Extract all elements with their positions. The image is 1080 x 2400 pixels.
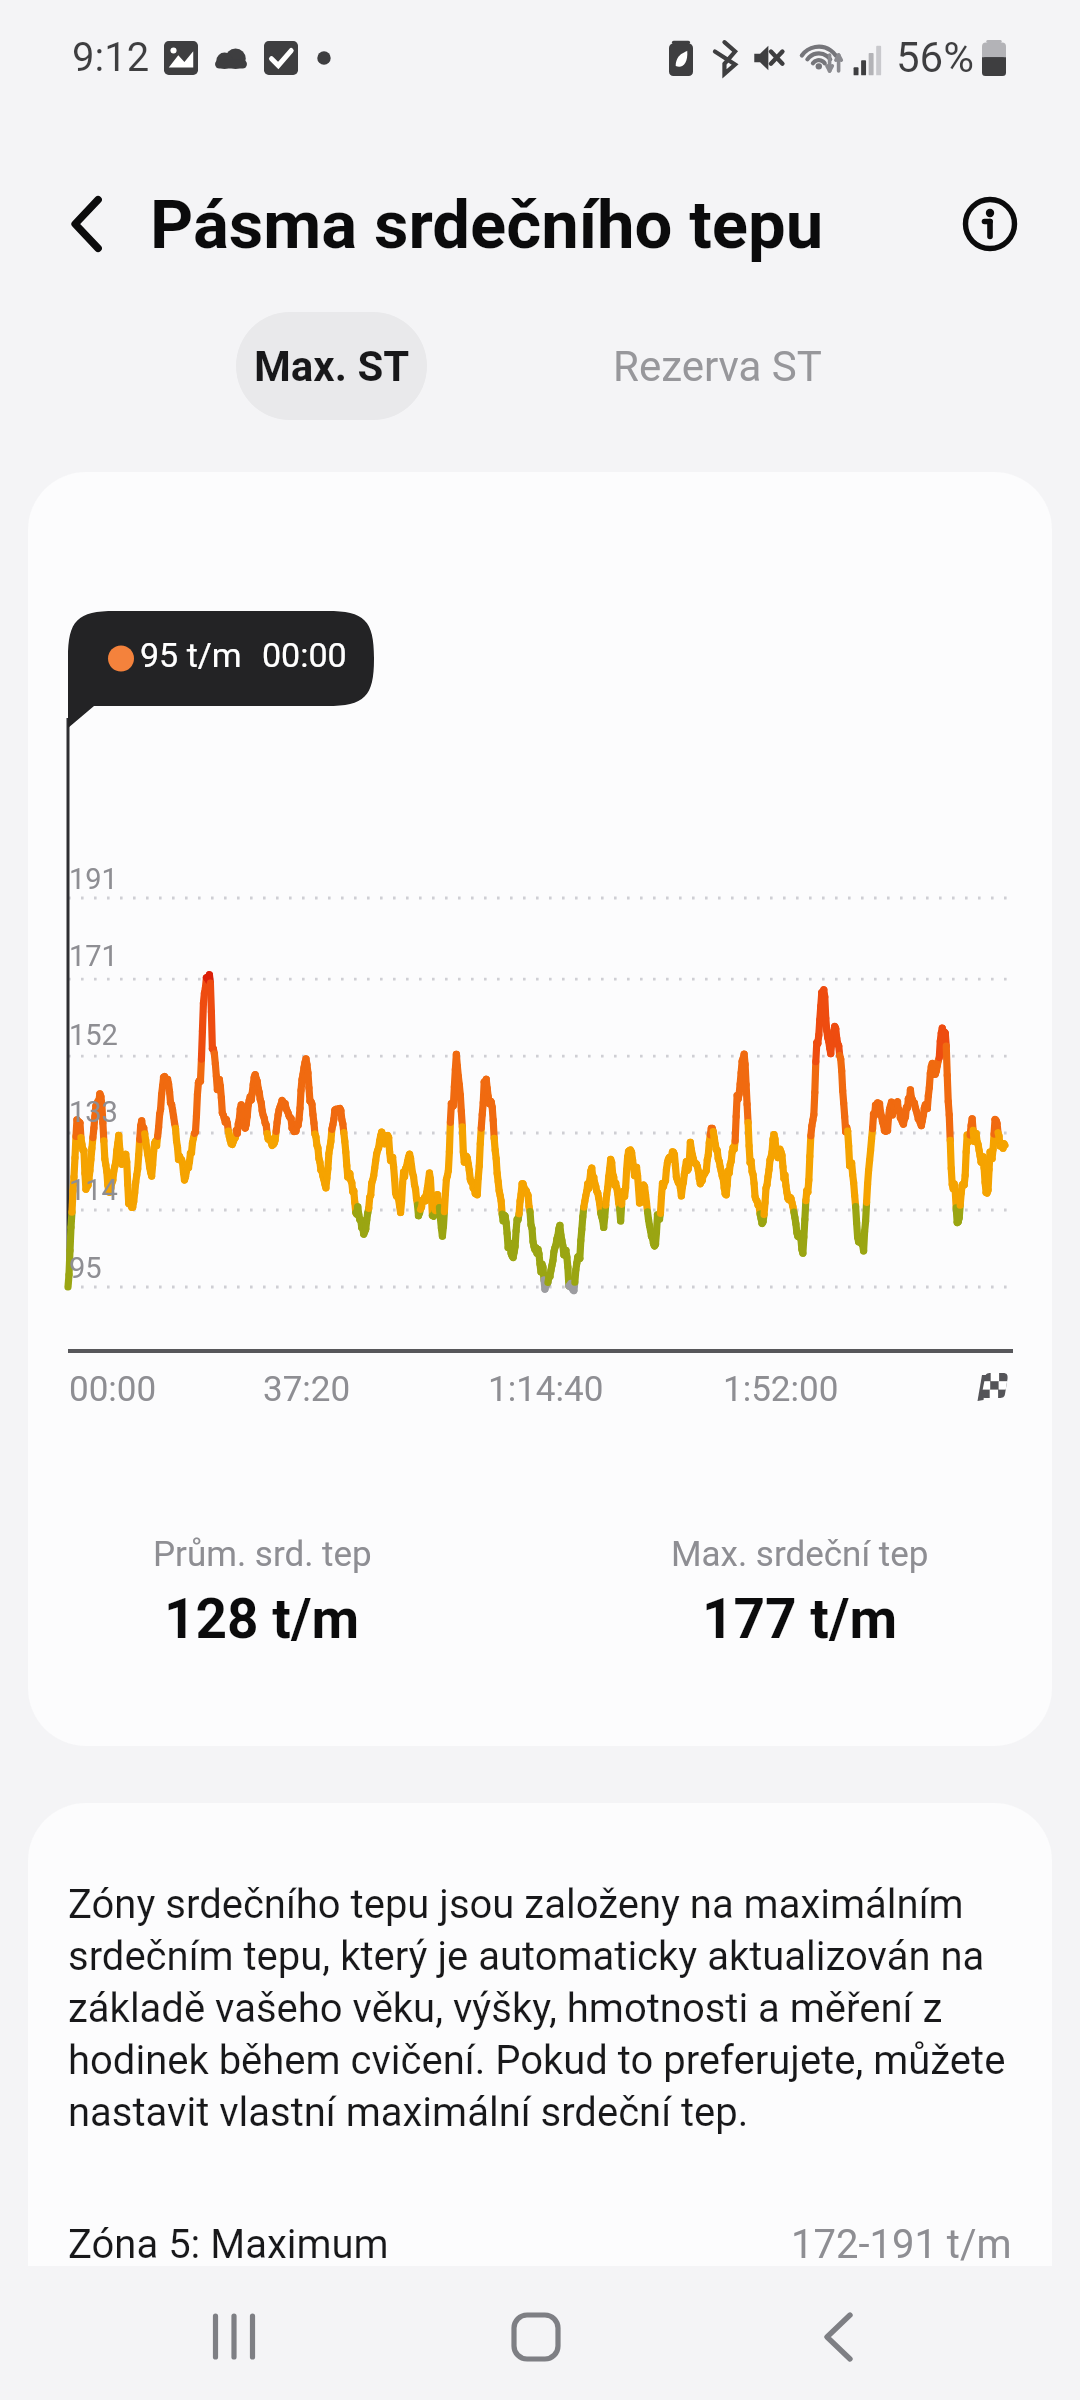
staticText: 128 t/m	[164, 1587, 360, 1651]
staticText: 177 t/m	[702, 1587, 898, 1651]
staticText: 56%	[896, 33, 974, 82]
staticText: 1:14:40	[488, 1369, 604, 1410]
staticText: 172-191 t/m	[791, 2221, 1012, 2268]
staticText: 95	[69, 1251, 102, 1285]
staticText: Max. ST	[254, 342, 410, 391]
button[interactable]: Rezerva ST	[552, 312, 882, 420]
other: Finish	[972, 1370, 1012, 1404]
staticText: 171	[69, 939, 118, 973]
staticText: 37:20	[263, 1369, 351, 1410]
staticText: 00:00	[69, 1369, 157, 1410]
staticText: Zóny srdečního tepu jsou založeny na max…	[68, 1881, 1030, 2136]
button[interactable]: Back	[42, 178, 134, 270]
staticText: 191	[69, 862, 118, 896]
button[interactable]: Zóna 5: Maximum	[28, 2208, 1052, 2280]
staticText: 9:12	[72, 34, 150, 81]
staticText: 95 t/m	[140, 635, 242, 675]
button[interactable]: Home	[476, 2290, 596, 2386]
staticText: Zóna 5: Maximum	[68, 2221, 389, 2268]
staticText: 152	[69, 1018, 118, 1052]
button[interactable]: Back	[778, 2290, 898, 2386]
staticText: 1:52:00	[723, 1369, 839, 1410]
staticText: Prům. srd. tep	[153, 1534, 372, 1575]
button[interactable]: Recent apps	[174, 2290, 294, 2386]
staticText: Rezerva ST	[613, 342, 822, 391]
button[interactable]: Information	[954, 188, 1026, 260]
staticText: 133	[69, 1095, 118, 1129]
button[interactable]: Max. ST	[236, 312, 427, 420]
staticText: 00:00	[262, 635, 347, 675]
staticText: Max. srdeční tep	[671, 1534, 929, 1575]
staticText: Pásma srdečního tepu	[150, 186, 824, 265]
staticText: 114	[69, 1173, 118, 1207]
